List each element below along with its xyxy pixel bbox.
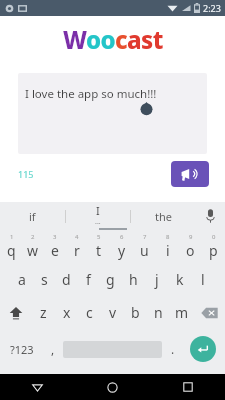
staticText: r (74, 241, 80, 260)
button[interactable]: ?123 (0, 329, 44, 369)
staticText: a (18, 270, 26, 289)
button[interactable]: g (99, 263, 122, 296)
button[interactable]: k (168, 263, 191, 296)
button[interactable]: 8 (156, 230, 179, 263)
button[interactable]: Voice input (195, 202, 225, 230)
button[interactable]: 9 (179, 230, 202, 263)
staticText: 9 (189, 233, 193, 241)
staticText: the (155, 209, 172, 224)
staticText: I (96, 203, 100, 218)
button[interactable]: Home (75, 374, 150, 400)
button[interactable]: x (55, 296, 78, 329)
staticText: 7 (143, 233, 147, 241)
button[interactable]: z (32, 296, 55, 329)
button[interactable]: v (101, 296, 124, 329)
button[interactable]: n (147, 296, 170, 329)
staticText: i (166, 241, 170, 260)
button[interactable]: Back (0, 374, 75, 400)
staticText: n (154, 303, 163, 322)
staticText: d (62, 270, 71, 289)
button[interactable]: c (78, 296, 101, 329)
staticText: v (109, 303, 117, 322)
staticText: s (41, 270, 48, 289)
staticText: 4 (75, 233, 79, 241)
staticText: o (186, 241, 195, 260)
staticText: 6 (120, 233, 124, 241)
staticText: 5 (97, 233, 101, 241)
staticText: h (129, 270, 138, 289)
button[interactable]: 0 (202, 230, 225, 263)
staticText: I love the app so much!!! (25, 86, 157, 102)
button[interactable]: Enter (190, 336, 216, 362)
staticText: l (201, 270, 205, 289)
staticText: x (63, 303, 71, 322)
button[interactable]: 5 (88, 230, 110, 263)
button[interactable]: f (77, 263, 99, 296)
staticText: ··· (95, 219, 101, 229)
staticText: f (86, 270, 91, 289)
button[interactable]: Recent apps (150, 374, 225, 400)
staticText: t (96, 241, 102, 260)
button[interactable]: j (145, 263, 168, 296)
button[interactable]: h (122, 263, 145, 296)
staticText: e (51, 241, 59, 260)
staticText: 2 (31, 233, 35, 241)
button[interactable]: I love the app so much!!! (18, 73, 207, 154)
staticText: 3 (53, 233, 57, 241)
staticText: if (29, 209, 36, 224)
button[interactable]: 2 (22, 230, 44, 263)
button[interactable]: the (131, 202, 195, 230)
button[interactable]: 4 (66, 230, 88, 263)
button[interactable]: . (164, 329, 181, 369)
button[interactable]: b (124, 296, 147, 329)
button[interactable]: , (44, 329, 61, 369)
button[interactable]: 6 (110, 230, 133, 263)
button[interactable]: l (191, 263, 214, 296)
button[interactable]: 1 (0, 230, 22, 263)
button[interactable]: Shift (0, 296, 32, 329)
staticText: . (171, 341, 175, 357)
staticText: j (155, 270, 159, 289)
staticText: k (176, 270, 184, 289)
staticText: q (7, 241, 16, 260)
button[interactable]: d (55, 263, 77, 296)
staticText: 8 (166, 233, 170, 241)
staticText: g (106, 270, 115, 289)
button[interactable]: 7 (133, 230, 156, 263)
button[interactable]: a (11, 263, 33, 296)
button[interactable]: s (33, 263, 55, 296)
staticText: u (140, 241, 149, 260)
staticText: Woocast (63, 23, 163, 56)
button[interactable]: I (66, 202, 130, 230)
staticText: 115 (18, 168, 34, 180)
button[interactable]: Backspace (193, 296, 225, 329)
staticText: ?123 (10, 342, 34, 357)
button[interactable]: 3 (44, 230, 66, 263)
staticText: , (51, 341, 55, 357)
button[interactable]: if (0, 202, 65, 230)
staticText: b (131, 303, 140, 322)
staticText: 1 (10, 233, 14, 241)
staticText: y (118, 241, 126, 260)
staticText: z (40, 303, 47, 322)
staticText: w (27, 241, 39, 260)
staticText: p (209, 241, 218, 260)
staticText: c (86, 303, 93, 322)
staticText: 0 (212, 233, 216, 241)
staticText: m (175, 303, 189, 322)
staticText: 2:23 (203, 2, 221, 14)
button[interactable]: Broadcast (171, 161, 209, 187)
button[interactable]: m (170, 296, 193, 329)
